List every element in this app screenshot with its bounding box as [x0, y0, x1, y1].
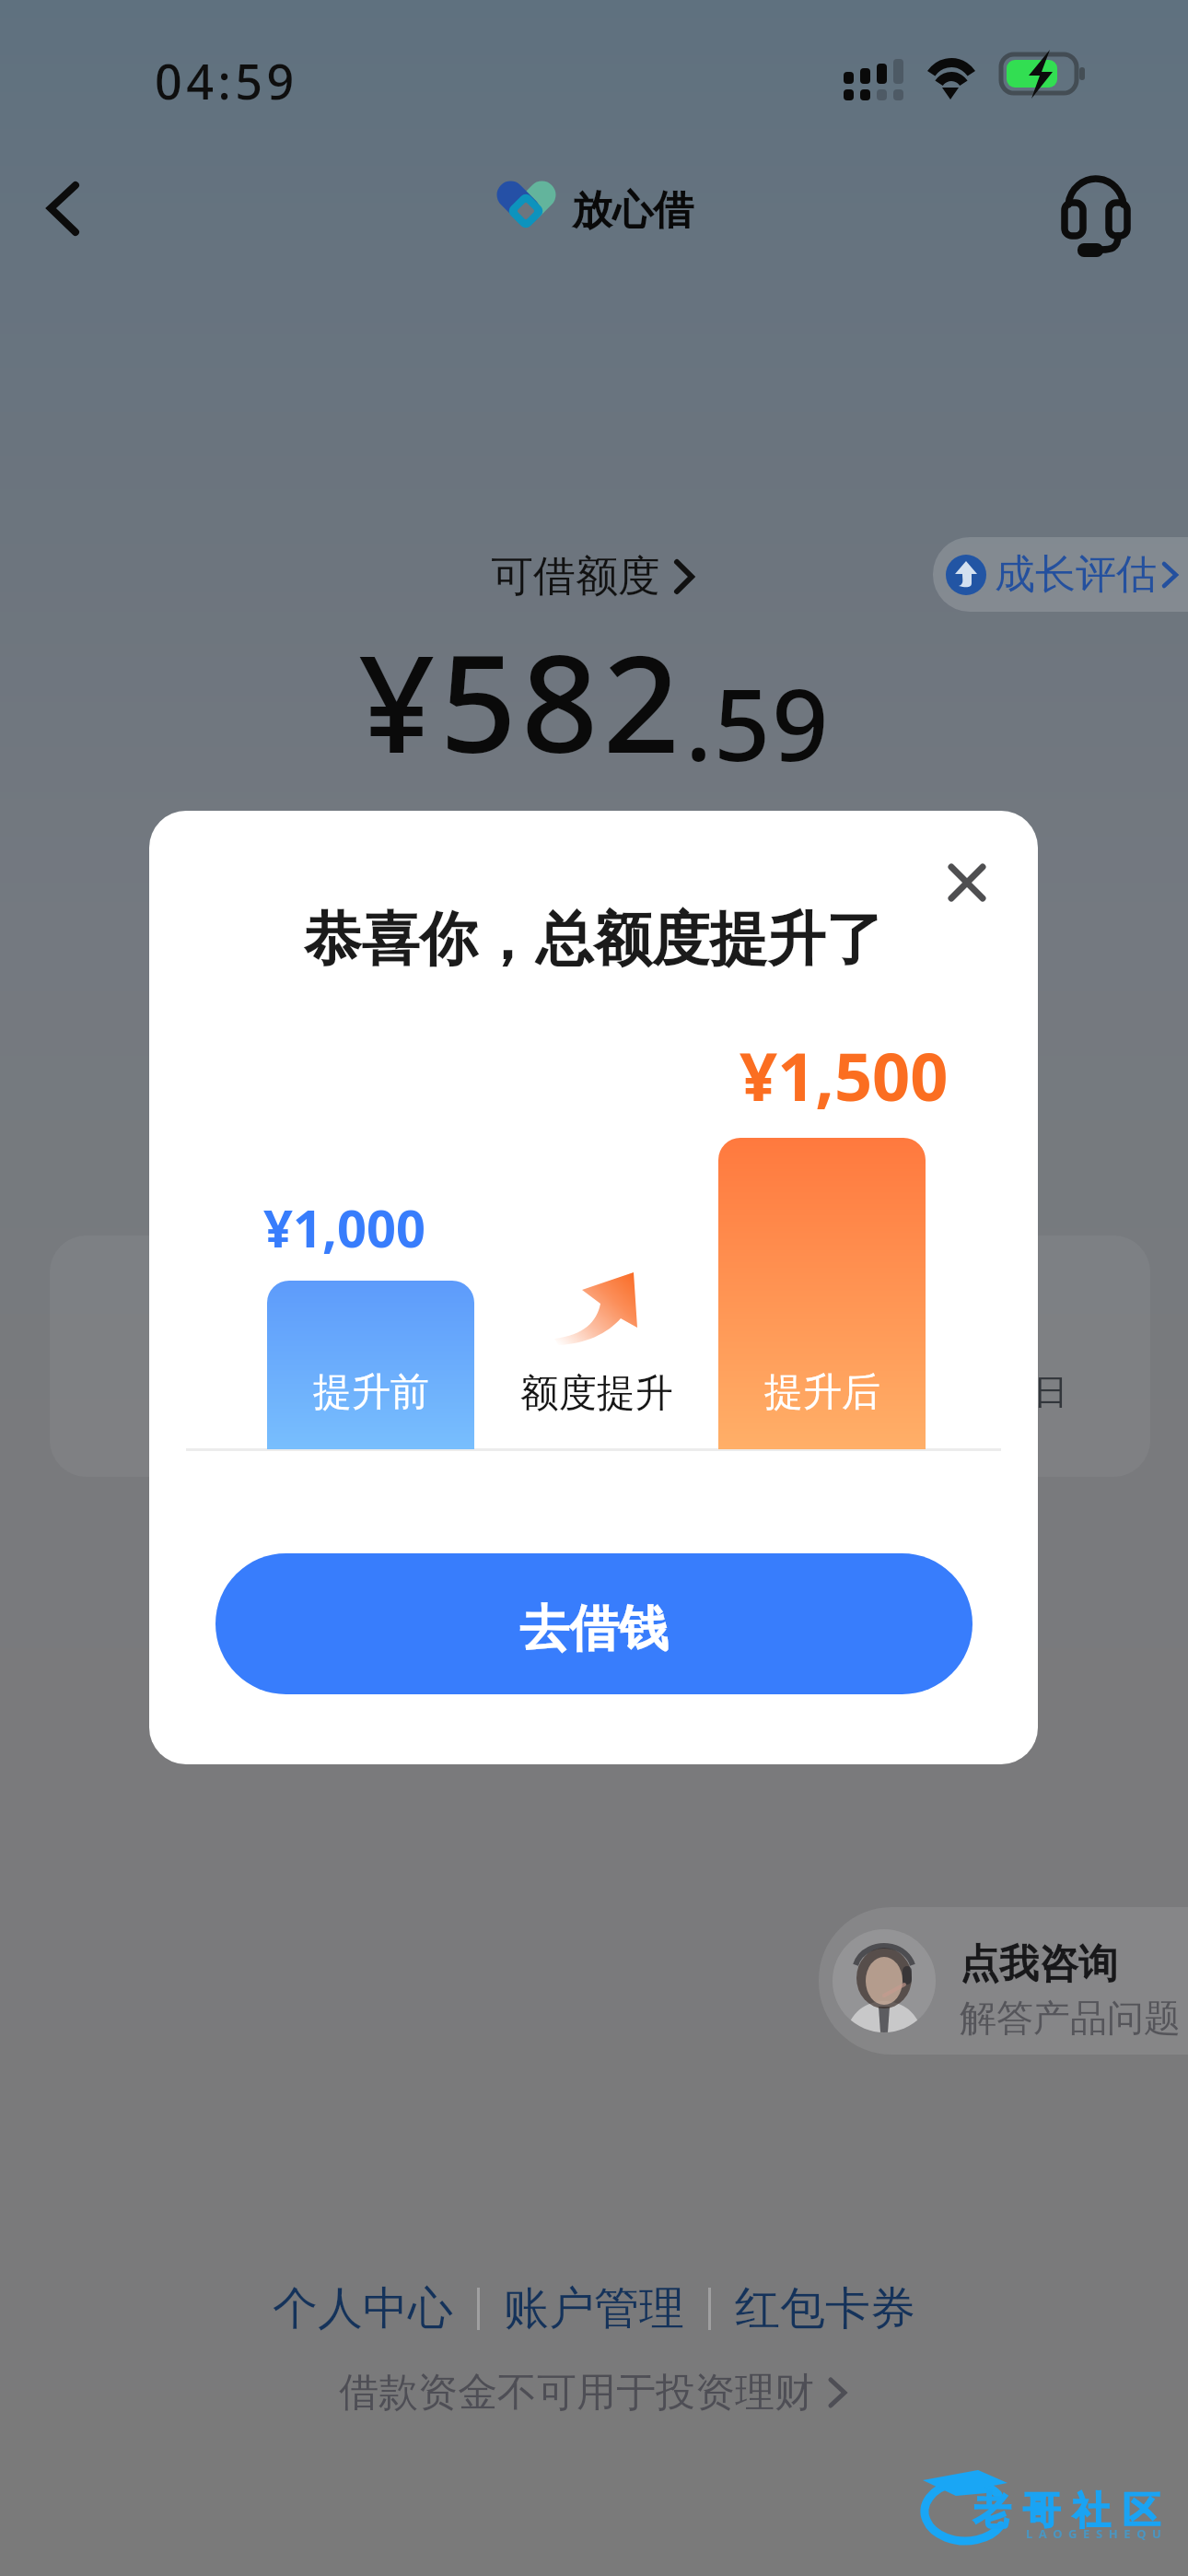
staticText: 个人中心: [273, 2280, 453, 2337]
button[interactable]: 点我咨询: [819, 1907, 1188, 2055]
button[interactable]: 个人中心: [273, 2275, 453, 2343]
button[interactable]: 去借钱: [215, 1553, 973, 1694]
button[interactable]: Close: [930, 843, 1004, 917]
staticText: 账户管理: [504, 2280, 684, 2337]
staticText: .59: [685, 656, 831, 790]
button[interactable]: Customer service: [1061, 173, 1138, 251]
staticText: LAOGESHEQU: [1026, 2525, 1168, 2542]
staticText: 放心借: [572, 185, 693, 236]
staticText: 老哥社区: [967, 2488, 1166, 2535]
staticText: 借款资金不可用于投资理财: [339, 2368, 814, 2418]
button[interactable]: 可借额度: [491, 550, 697, 603]
staticText: 红包卡券: [735, 2280, 915, 2337]
staticText: 点我咨询: [960, 1939, 1118, 1989]
staticText: 可借额度: [491, 550, 660, 603]
staticText: 04:59: [155, 48, 298, 113]
staticText: ¥582: [358, 609, 685, 792]
button[interactable]: 成长评估: [933, 537, 1188, 612]
button[interactable]: 账户管理: [504, 2275, 684, 2343]
button[interactable]: 借款资金不可用于投资理财: [339, 2368, 849, 2418]
button[interactable]: 红包卡券: [735, 2275, 915, 2343]
staticText: 提升后: [764, 1368, 880, 1417]
staticText: 额度提升: [520, 1369, 673, 1417]
staticText: 去借钱: [519, 1598, 669, 1660]
staticText: 成长评估: [995, 549, 1157, 600]
staticText: ¥1,500: [740, 1030, 949, 1120]
button[interactable]: Back: [18, 162, 111, 254]
staticText: 提升前: [313, 1368, 429, 1417]
staticText: 恭喜你，总额度提升了: [149, 903, 1038, 976]
staticText: ¥1,000: [263, 1192, 426, 1262]
staticText: 解答产品问题: [960, 1995, 1181, 2041]
staticText: 日: [1033, 1370, 1068, 1414]
